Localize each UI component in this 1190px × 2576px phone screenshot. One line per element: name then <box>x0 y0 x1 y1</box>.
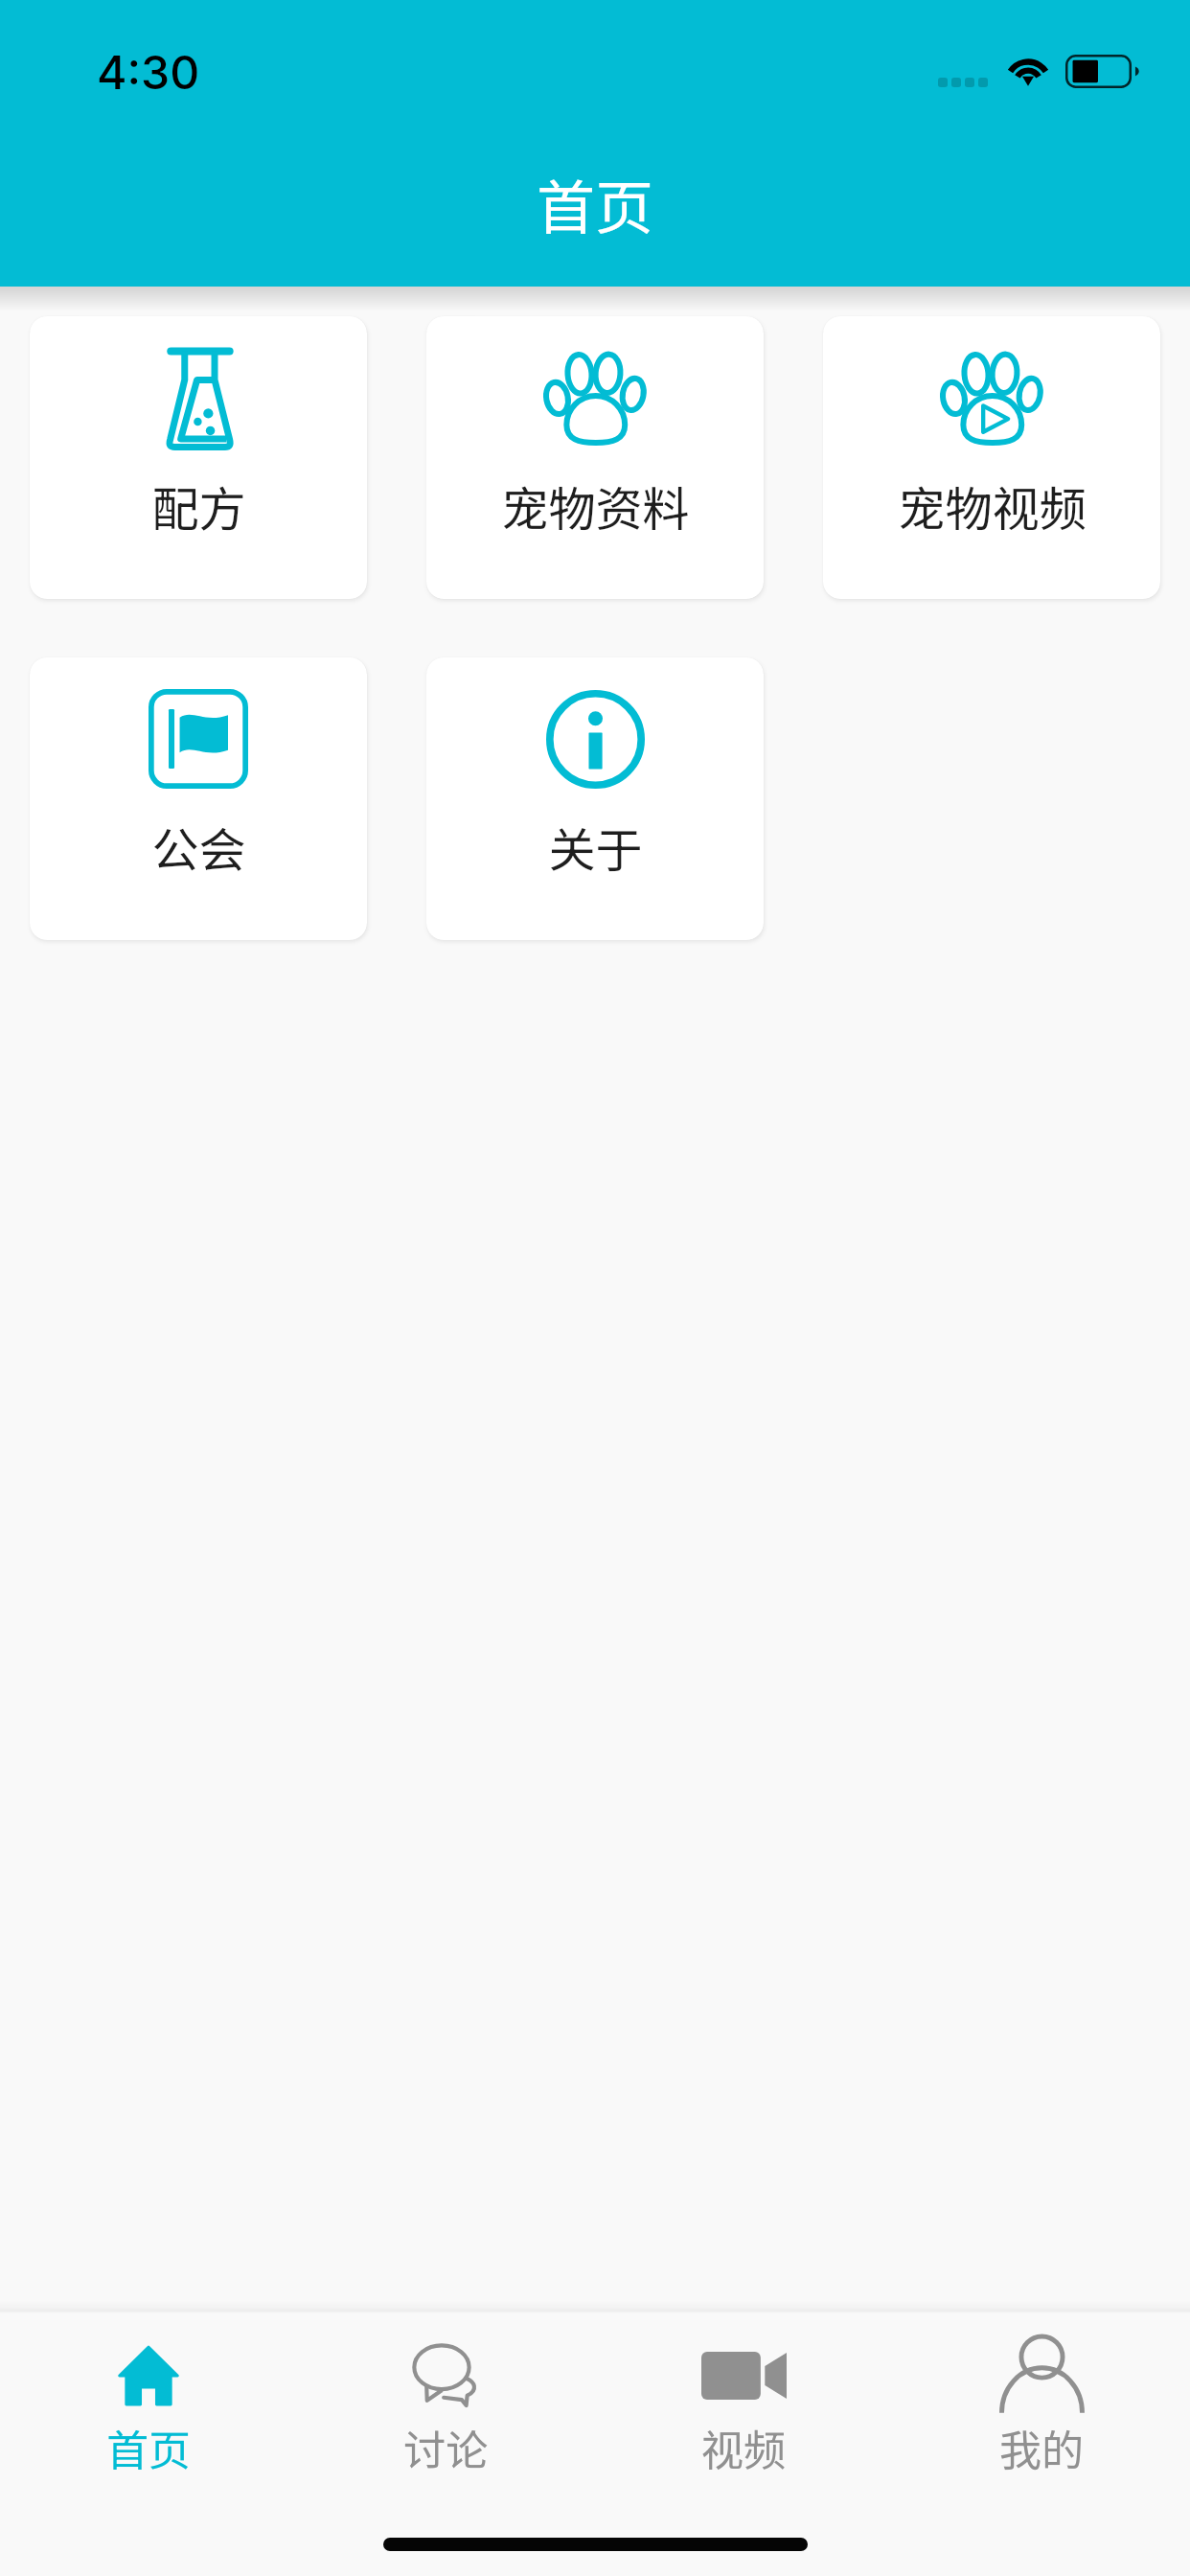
button[interactable]: 宠物视频 <box>823 316 1160 599</box>
staticText: 宠物资料 <box>501 471 690 540</box>
staticText: 讨论 <box>403 2417 488 2478</box>
button[interactable]: 视频 <box>594 2313 892 2492</box>
staticText: 配方 <box>151 471 246 540</box>
button[interactable]: 关于 <box>426 657 764 940</box>
button[interactable]: 公会 <box>30 657 367 940</box>
staticText: 公会 <box>151 813 246 881</box>
button[interactable]: 宠物资料 <box>426 316 764 599</box>
button[interactable]: 讨论 <box>297 2313 594 2492</box>
button[interactable]: 配方 <box>30 316 367 599</box>
staticText: 首页 <box>106 2417 191 2478</box>
staticText: 视频 <box>701 2417 786 2478</box>
staticText: 宠物视频 <box>898 471 1087 540</box>
staticText: 首页 <box>537 161 654 245</box>
button[interactable]: 首页 <box>0 2313 297 2492</box>
staticText: 关于 <box>548 813 643 881</box>
button[interactable]: 我的 <box>892 2313 1190 2492</box>
staticText: 我的 <box>999 2417 1084 2478</box>
staticText: 4:30 <box>97 44 200 100</box>
